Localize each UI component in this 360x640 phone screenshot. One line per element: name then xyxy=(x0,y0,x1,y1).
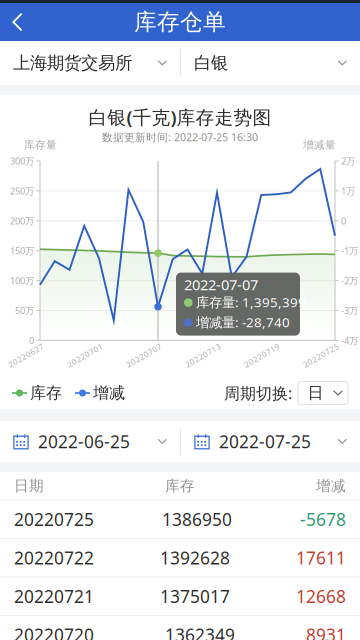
staticText: 库存量: 1,395,399 xyxy=(196,293,306,311)
staticText: -4万 xyxy=(341,334,358,347)
button[interactable]: Back xyxy=(0,3,50,41)
staticText: -2万 xyxy=(341,274,358,287)
staticText: 周期切换: xyxy=(224,382,292,404)
staticText: 300万 xyxy=(10,155,34,167)
staticText: 2万 xyxy=(341,155,355,167)
staticText: 上海期货交易所 xyxy=(13,52,132,74)
staticText: 1362349 xyxy=(165,623,235,640)
staticText: 库存 xyxy=(30,383,62,403)
staticText: 1392628 xyxy=(160,546,230,569)
staticText: 数据更新时间: 2022-07-25 16:30 xyxy=(102,130,258,144)
staticText: 20220725 xyxy=(301,350,341,361)
staticText: 1万 xyxy=(341,185,355,197)
staticText: 日 xyxy=(307,383,323,403)
staticText: 0 xyxy=(29,334,34,347)
staticText: 20220627 xyxy=(6,350,46,361)
staticText: 2022-07-07 xyxy=(184,275,258,294)
staticText: 白银(千克)库存走势图 xyxy=(88,105,271,129)
staticText: 0 xyxy=(341,215,346,227)
staticText: 20220722 xyxy=(14,546,94,569)
staticText: 日期 xyxy=(14,477,44,495)
staticText: -3万 xyxy=(341,304,358,317)
staticText: 库存仓单 xyxy=(134,8,226,36)
staticText: 增减量 xyxy=(303,138,336,151)
staticText: 150万 xyxy=(10,244,34,257)
staticText: 20220701 xyxy=(65,350,105,361)
staticText: 20220720 xyxy=(14,623,94,640)
staticText: -5678 xyxy=(300,508,346,531)
staticText: -1万 xyxy=(341,244,358,257)
button[interactable]: 白银 xyxy=(181,41,360,85)
button[interactable]: 2022-07-25 xyxy=(181,421,360,462)
staticText: 库存 xyxy=(165,477,195,495)
staticText: 20220707 xyxy=(124,350,164,361)
staticText: 1375017 xyxy=(160,585,230,608)
staticText: 库存量 xyxy=(24,138,57,151)
staticText: 50万 xyxy=(15,304,34,317)
staticText: 2022-06-25 xyxy=(38,430,130,453)
staticText: 200万 xyxy=(10,215,34,227)
staticText: 17611 xyxy=(296,546,346,569)
staticText: 20220721 xyxy=(14,585,94,608)
staticText: 20220725 xyxy=(14,508,94,531)
button[interactable]: 上海期货交易所 xyxy=(0,41,180,85)
staticText: 1386950 xyxy=(162,508,232,531)
staticText: 100万 xyxy=(10,274,34,287)
staticText: 20220719 xyxy=(242,350,282,361)
staticText: 增减 xyxy=(93,383,125,403)
staticText: 8931 xyxy=(306,623,346,640)
staticText: 2022-07-25 xyxy=(219,430,311,453)
staticText: 增减 xyxy=(316,477,346,495)
button[interactable]: 2022-06-25 xyxy=(0,421,180,462)
staticText: 20220713 xyxy=(183,350,223,361)
staticText: 白银 xyxy=(194,52,228,74)
button[interactable]: 日 xyxy=(298,381,348,404)
staticText: 12668 xyxy=(296,585,346,608)
staticText: 增减量: -28,740 xyxy=(196,313,290,331)
staticText: 250万 xyxy=(10,185,34,197)
